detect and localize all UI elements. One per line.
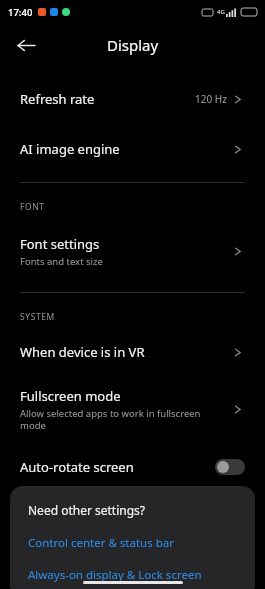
button[interactable]: AI image engine [0,130,265,168]
staticText: Auto-rotate screen [20,458,134,476]
staticText: Need other settings? [28,502,146,518]
staticText: Font settings [20,235,100,253]
button[interactable]: Control center & status bar [28,535,174,551]
button[interactable]: Auto-rotate screen [0,448,265,486]
button[interactable]: Auto-rotate screen toggle [215,459,245,475]
button[interactable]: Back [10,29,42,61]
staticText: 17:40 [8,6,33,19]
staticText: Fullscreen mode [20,387,121,405]
button[interactable]: Refresh rate [0,80,265,118]
staticText: Display [107,35,159,55]
staticText: Fonts and text size [20,255,103,268]
staticText: SYSTEM [20,311,55,323]
staticText: 120 Hz [195,92,227,106]
button[interactable]: Font settings [0,225,265,278]
staticText: FONT [20,201,45,213]
button[interactable]: When device is in VR [0,333,265,371]
staticText: 4G [217,8,225,16]
staticText: Control center & status bar [28,535,174,551]
staticText: Always-on display & Lock screen [28,567,202,583]
staticText: When device is in VR [20,343,145,361]
button[interactable]: Always-on display & Lock screen [28,567,202,583]
staticText: Refresh rate [20,90,95,108]
staticText: Allow selected apps to work in fullscree… [20,407,224,432]
staticText: AI image engine [20,140,120,158]
button[interactable]: Fullscreen mode [0,377,265,442]
